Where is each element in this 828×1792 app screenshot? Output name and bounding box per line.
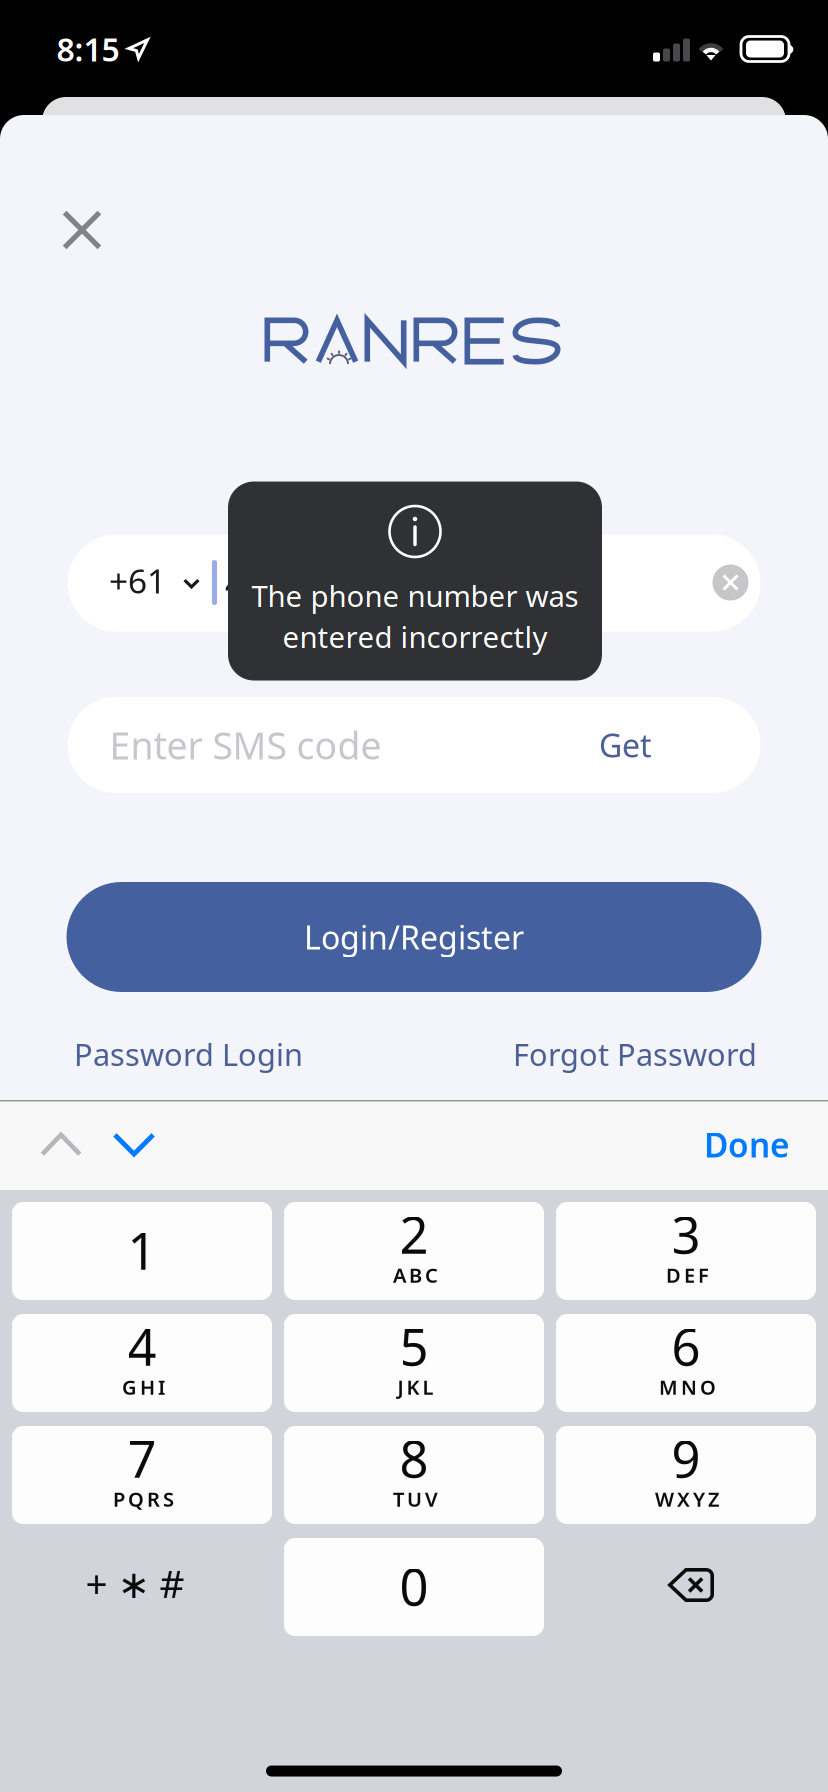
button[interactable]: Previous field (24, 1111, 98, 1177)
button[interactable]: Login/Register (66, 882, 761, 992)
button[interactable]: 2 (284, 1202, 544, 1300)
button[interactable]: 6 (556, 1314, 816, 1412)
staticText: ABC (393, 1262, 438, 1288)
staticText: +61 (109, 558, 166, 603)
staticText: Get (599, 724, 652, 766)
staticText: TUV (393, 1486, 438, 1512)
button[interactable]: 9 (556, 1426, 816, 1524)
staticText: GHI (122, 1374, 165, 1400)
staticText: 4 (225, 559, 246, 606)
button[interactable]: Symbols (5, 1534, 265, 1632)
staticText: Done (704, 1122, 790, 1167)
button[interactable]: Clear text (706, 558, 754, 606)
staticText: 9 (671, 1424, 700, 1492)
staticText: 0 (399, 1552, 428, 1620)
button[interactable]: 5 (284, 1314, 544, 1412)
button[interactable]: Next field (97, 1111, 171, 1177)
staticText: 4 (127, 1312, 156, 1380)
staticText: 6 (671, 1312, 700, 1380)
staticText: 1 (127, 1216, 156, 1284)
staticText: The phone number was (251, 576, 578, 615)
button[interactable]: Close (45, 193, 119, 267)
button[interactable]: 3 (556, 1202, 816, 1300)
staticText: Enter SMS code (109, 720, 381, 770)
button[interactable]: Delete (561, 1536, 821, 1634)
staticText: 5 (399, 1312, 428, 1380)
button[interactable]: 0 (284, 1538, 544, 1636)
button[interactable]: 8 (284, 1426, 544, 1524)
staticText: Password Login (74, 1034, 303, 1074)
staticText: MNO (659, 1374, 716, 1400)
staticText: JKL (397, 1374, 433, 1400)
button[interactable]: Password Login (74, 1023, 314, 1085)
button[interactable]: Get (570, 705, 680, 785)
button[interactable]: 7 (12, 1426, 272, 1524)
staticText: + ∗ # (85, 1557, 184, 1609)
button[interactable]: 4 (12, 1314, 272, 1412)
staticText: entered incorrectly (282, 617, 547, 656)
staticText: 2 (399, 1200, 428, 1268)
button[interactable]: Forgot Password (517, 1023, 757, 1085)
staticText: Login/Register (304, 916, 524, 958)
staticText: Forgot Password (513, 1034, 757, 1074)
staticText: WXYZ (655, 1486, 720, 1512)
button[interactable]: Done (650, 1111, 790, 1177)
staticText: 3 (671, 1200, 700, 1268)
staticText: 8:15 (56, 28, 119, 70)
staticText: 8 (399, 1424, 428, 1492)
button[interactable]: 1 (12, 1202, 272, 1300)
staticText: 7 (127, 1424, 156, 1492)
staticText: PQRS (113, 1486, 174, 1512)
staticText: DEF (666, 1262, 709, 1288)
